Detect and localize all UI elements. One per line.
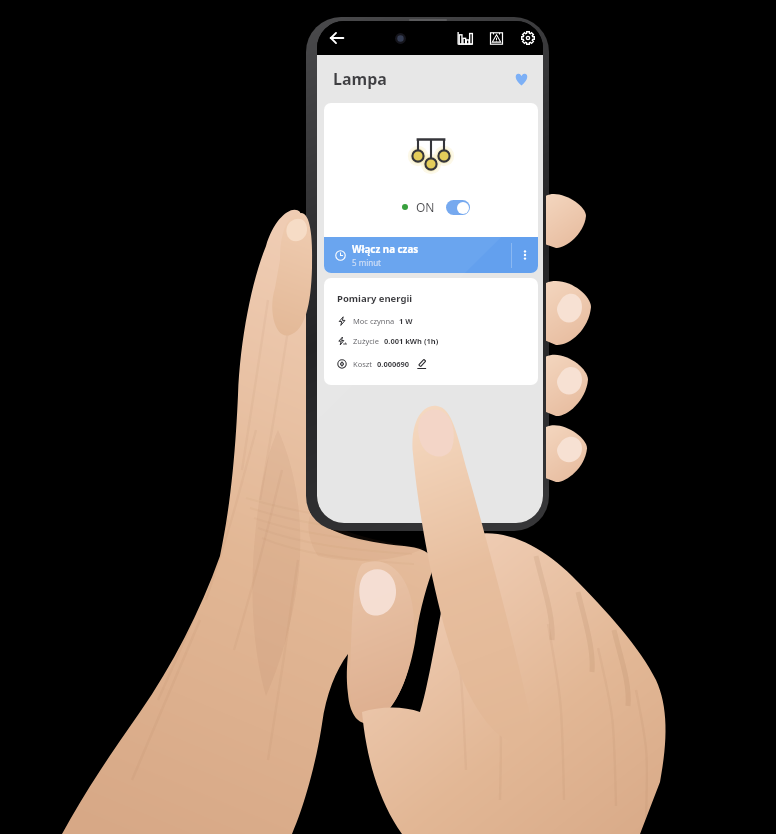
staticText: Koszt [353,359,373,369]
staticText: Lampa [333,68,387,90]
staticText: ON [416,199,435,215]
button[interactable]: Favourite [514,72,529,87]
staticText: Zużycie [353,336,380,346]
staticText: Moc czynna [353,316,395,326]
staticText: Włącz na czas [352,243,419,256]
button[interactable]: More options [512,237,538,273]
staticText: Pomiary energii [337,292,413,305]
button[interactable]: Settings [521,31,535,45]
staticText: 1 W [399,316,413,326]
button[interactable]: Włącz na czas [324,237,511,273]
button[interactable]: Edit [416,358,427,369]
button[interactable]: Toggle [446,200,470,215]
staticText: 5 minut [352,257,381,268]
staticText: 0.001 kWh (1h) [384,336,439,346]
button[interactable]: Back [329,30,345,46]
button[interactable]: Statistics [457,30,473,46]
button[interactable]: Alerts [489,31,504,46]
staticText: 0.000690 [377,359,410,369]
